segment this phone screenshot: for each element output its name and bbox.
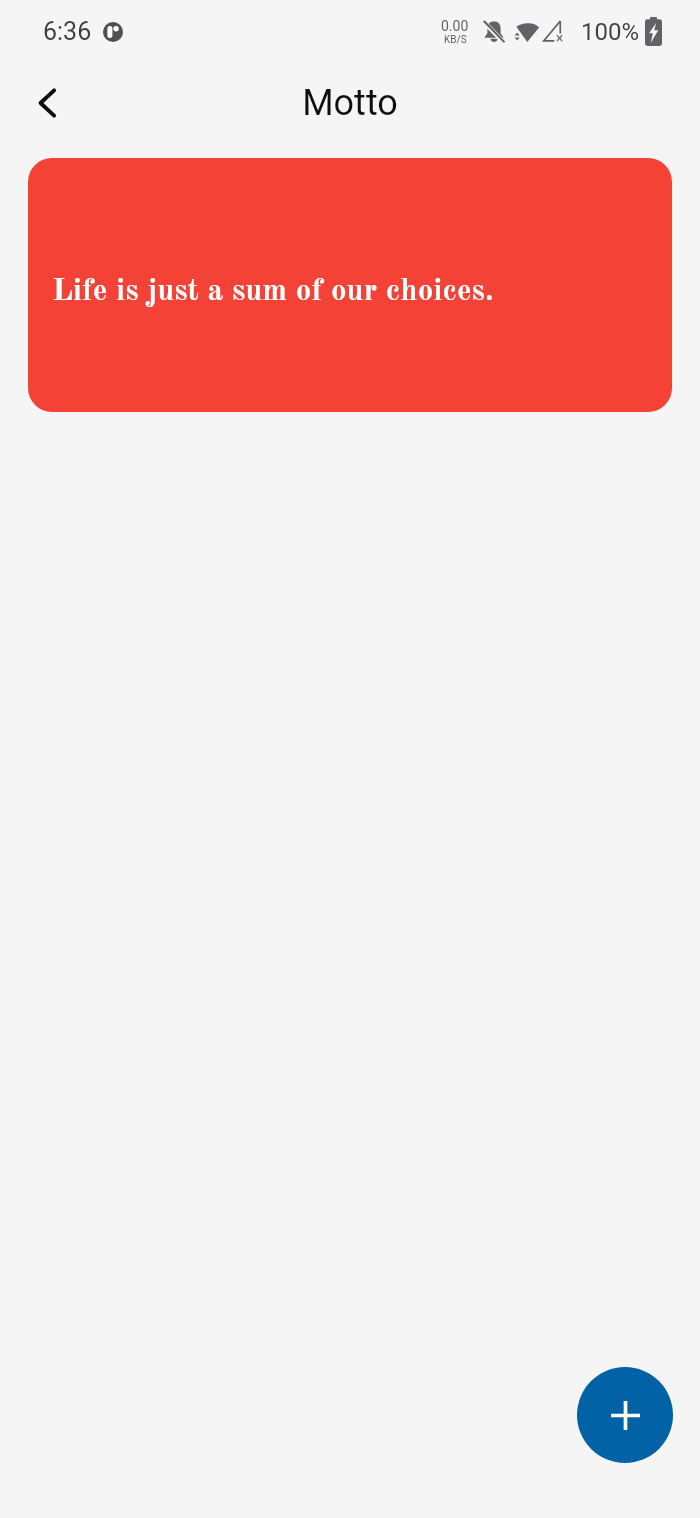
staticText: Motto xyxy=(302,82,398,124)
staticText: 0.00 xyxy=(441,18,469,34)
button[interactable]: Back xyxy=(16,71,80,135)
staticText: Life is just a sum of our choices. xyxy=(52,276,494,307)
button[interactable]: Add motto xyxy=(577,1367,673,1463)
staticText: 100% xyxy=(581,18,640,46)
staticText: 6:36 xyxy=(43,17,92,46)
staticText: KB/S xyxy=(444,34,467,46)
button[interactable]: Life is just a sum of our choices. xyxy=(28,158,672,412)
